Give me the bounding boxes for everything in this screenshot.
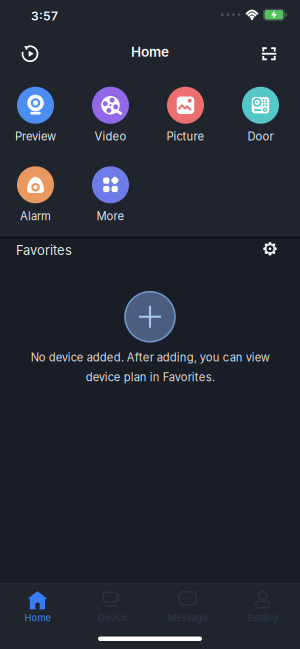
staticText: Picture (166, 130, 204, 143)
staticText: Home (131, 43, 169, 60)
staticText: Home (24, 612, 50, 623)
staticText: Favorites (16, 242, 72, 258)
button[interactable]: Setting (225, 590, 300, 623)
button[interactable]: Message (150, 590, 225, 623)
staticText: No device added. After adding, you can v… (30, 351, 269, 384)
button[interactable]: Preview (0, 87, 73, 143)
button[interactable]: Device (75, 590, 150, 623)
button[interactable]: Alarm (0, 166, 73, 223)
button[interactable]: Favorites settings (261, 241, 279, 259)
staticText: Device (98, 612, 127, 623)
staticText: More (96, 209, 124, 223)
button[interactable]: Playback (16, 40, 44, 68)
staticText: Preview (15, 130, 56, 143)
staticText: Alarm (20, 209, 51, 223)
button[interactable]: More (73, 166, 148, 223)
button[interactable]: Scan (255, 40, 283, 68)
button[interactable]: Picture (148, 87, 223, 143)
staticText: Door (247, 130, 273, 143)
button[interactable]: Add device (124, 291, 176, 343)
button[interactable]: Video (73, 87, 148, 143)
staticText: Setting (247, 612, 278, 623)
button[interactable]: Home (0, 590, 75, 623)
button[interactable]: Door (223, 87, 298, 143)
staticText: 3:57 (31, 9, 58, 23)
staticText: Video (94, 130, 126, 143)
staticText: Message (167, 612, 207, 623)
